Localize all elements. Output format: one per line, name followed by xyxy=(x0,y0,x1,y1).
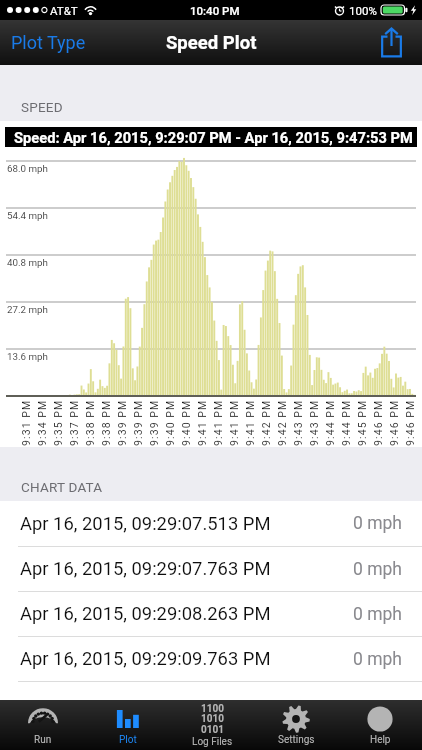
staticText: CHART DATA xyxy=(21,479,103,495)
button[interactable]: Plot xyxy=(85,700,170,750)
staticText: 100% xyxy=(349,4,377,17)
staticText: 0 mph xyxy=(353,513,402,534)
button[interactable]: Plot Type xyxy=(0,24,100,61)
staticText: Apr 16, 2015, 09:29:09.763 PM xyxy=(20,648,271,670)
button[interactable]: 1100 1010 0101 xyxy=(170,700,254,750)
staticText: Settings xyxy=(278,734,315,746)
staticText: Help xyxy=(370,734,391,746)
staticText: Speed Plot xyxy=(166,32,257,54)
button[interactable]: Run xyxy=(0,700,85,750)
button[interactable]: Settings xyxy=(254,700,338,750)
staticText: Plot xyxy=(119,734,137,746)
button[interactable]: Help xyxy=(338,700,422,750)
button[interactable]: Apr 16, 2015, 09:29:09.763 PM xyxy=(0,637,422,681)
staticText: Speed: Apr 16, 2015, 9:29:07 PM - Apr 16… xyxy=(14,129,413,146)
button[interactable]: Apr 16, 2015, 09:29:07.763 PM xyxy=(0,547,422,591)
staticText: Apr 16, 2015, 09:29:07.513 PM xyxy=(20,513,271,535)
staticText: AT&T xyxy=(50,4,78,17)
staticText: 0 mph xyxy=(353,559,402,580)
staticText: Log Files xyxy=(192,736,233,748)
staticText: 1100 1010 0101 xyxy=(201,703,224,736)
button[interactable]: Share xyxy=(365,22,422,63)
staticText: Run xyxy=(34,734,52,746)
button[interactable]: Apr 16, 2015, 09:29:07.513 PM xyxy=(0,501,422,546)
staticText: 0 mph xyxy=(353,604,402,625)
staticText: Plot Type xyxy=(11,32,86,53)
staticText: SPEED xyxy=(21,99,63,115)
button[interactable]: Apr 16, 2015, 09:29:08.263 PM xyxy=(0,592,422,636)
staticText: 10:40 PM xyxy=(190,4,240,17)
staticText: 0 mph xyxy=(353,649,402,670)
staticText: Apr 16, 2015, 09:29:07.763 PM xyxy=(20,558,271,580)
staticText: Apr 16, 2015, 09:29:08.263 PM xyxy=(20,603,271,625)
